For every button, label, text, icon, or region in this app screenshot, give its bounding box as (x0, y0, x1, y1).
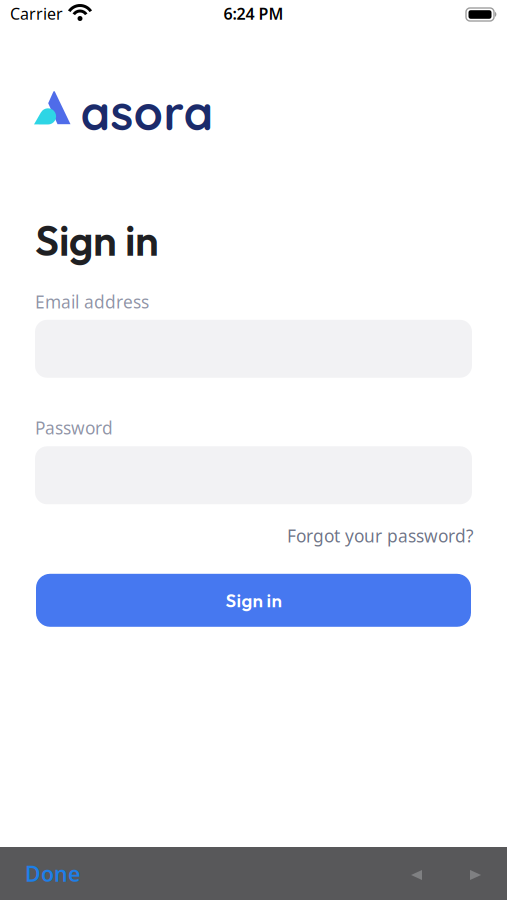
staticText: Forgot your password? (287, 524, 474, 547)
staticText: asora (80, 83, 213, 142)
button[interactable]: Done (25, 859, 80, 888)
staticText: Carrier (10, 3, 63, 24)
staticText: Sign in (35, 213, 159, 267)
button[interactable]: Next field (470, 868, 481, 878)
staticText: Done (25, 859, 80, 888)
button[interactable]: Sign in (36, 574, 471, 627)
button[interactable]: Forgot your password? (287, 524, 474, 547)
staticText: Email address (35, 290, 149, 313)
button[interactable]: Previous field (411, 868, 422, 878)
staticText: Password (35, 416, 113, 439)
staticText: 6:24 PM (223, 3, 283, 24)
staticText: Sign in (225, 588, 281, 612)
